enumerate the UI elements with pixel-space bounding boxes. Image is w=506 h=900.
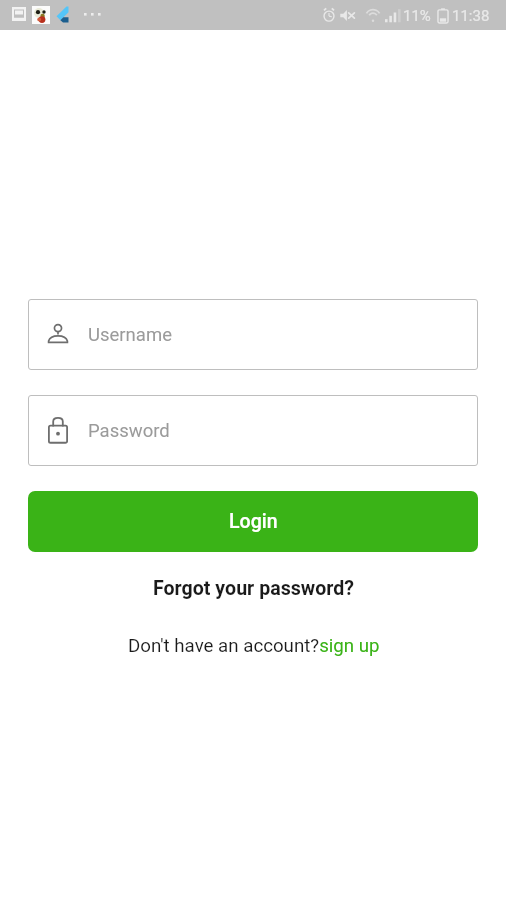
staticText: Login xyxy=(229,510,278,533)
button[interactable]: Login xyxy=(28,491,478,552)
button[interactable]: Password xyxy=(28,395,478,466)
button[interactable]: Username xyxy=(28,299,478,370)
staticText: 11:38 xyxy=(452,7,490,25)
button[interactable]: Don't have an account?sign up xyxy=(122,633,386,659)
button[interactable]: Forgot your password? xyxy=(147,575,361,602)
staticText: Username xyxy=(88,324,172,346)
staticText: Password xyxy=(88,420,170,442)
staticText: 11% xyxy=(403,7,431,25)
